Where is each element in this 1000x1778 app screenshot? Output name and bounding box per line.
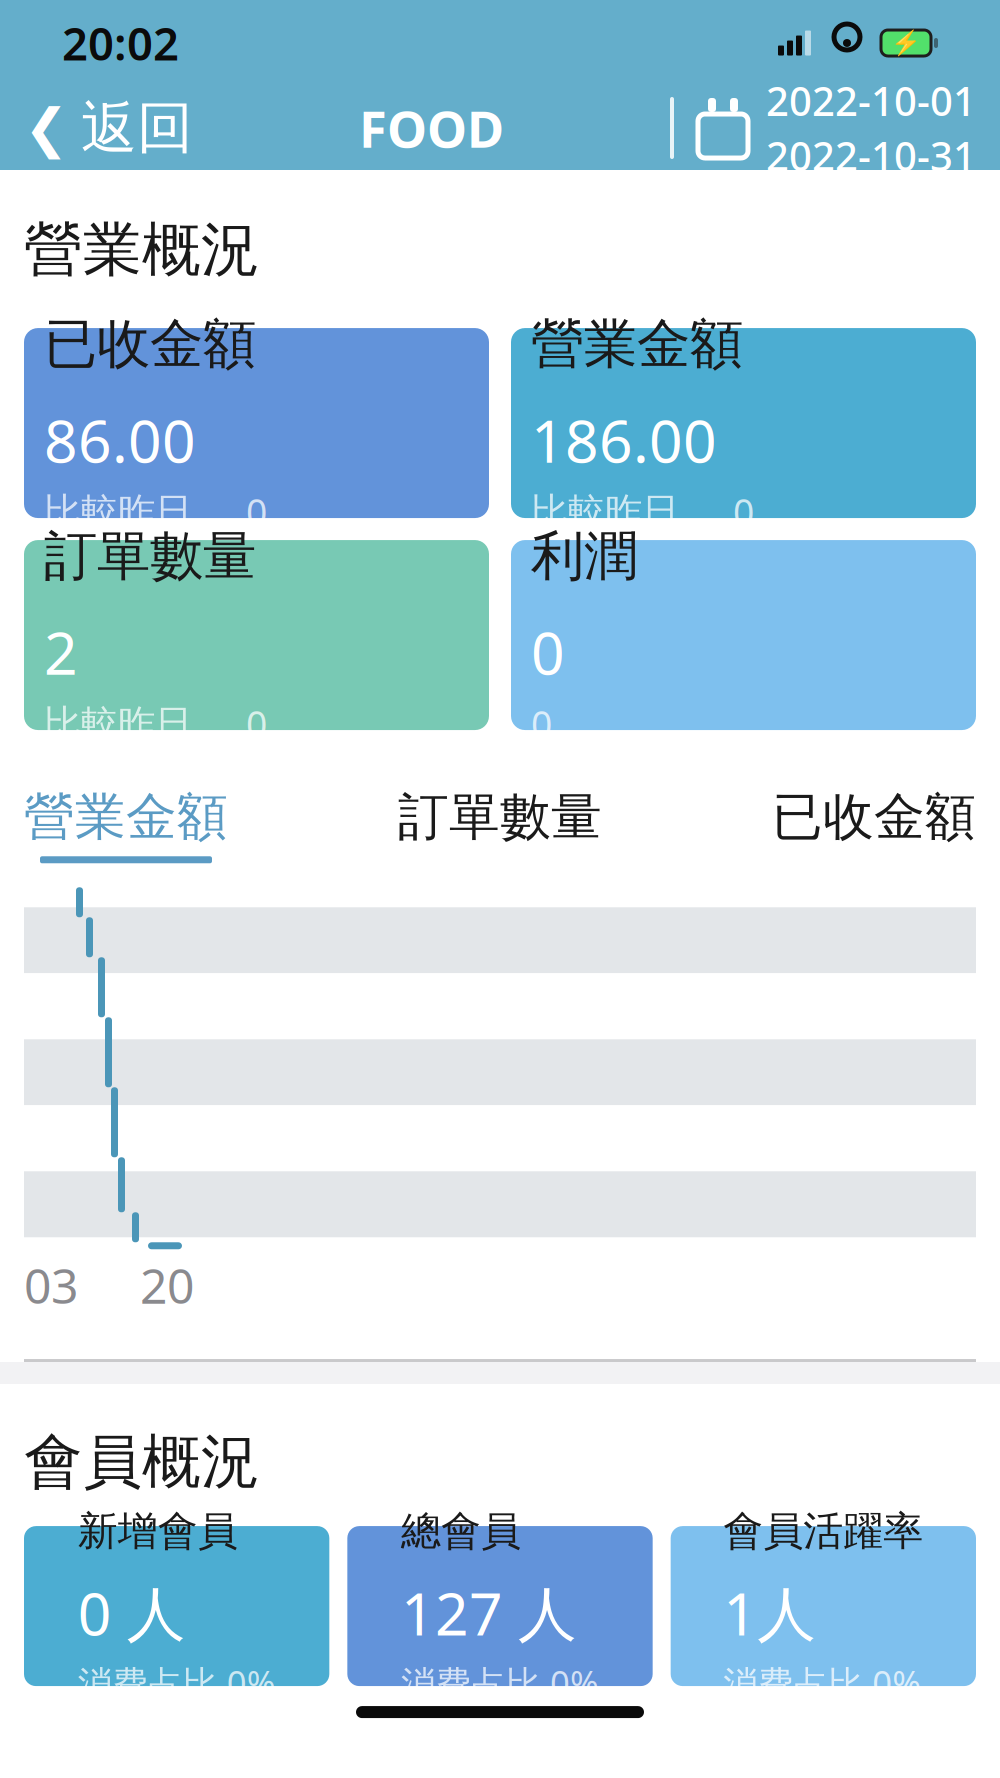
button[interactable]: ❮: [0, 86, 193, 170]
button[interactable]: 總會員: [347, 1526, 653, 1686]
staticText: 20: [140, 1253, 194, 1317]
staticText: 2022-10-01: [766, 74, 976, 127]
button[interactable]: 利潤: [511, 540, 976, 730]
staticText: 186.00: [531, 401, 717, 479]
staticText: ⚡: [891, 29, 921, 57]
staticText: FOOD: [359, 94, 504, 162]
staticText: 0: [531, 699, 552, 749]
staticText: 消费占比 0%: [78, 1660, 276, 1706]
staticText: 比較昨日: [44, 489, 192, 535]
staticText: 消费占比 0%: [401, 1660, 599, 1706]
staticText: 86.00: [44, 401, 196, 479]
button[interactable]: 訂單數量: [398, 786, 602, 863]
button[interactable]: Select date range: [670, 74, 1000, 182]
button[interactable]: 會員活躍率: [671, 1526, 976, 1686]
staticText: 0: [733, 487, 754, 537]
button[interactable]: 營業金額: [511, 328, 976, 518]
staticText: 會員活躍率: [723, 1507, 923, 1556]
staticText: 0: [246, 699, 267, 749]
staticText: 利潤: [531, 524, 637, 589]
staticText: 新增會員: [78, 1507, 238, 1556]
staticText: 營業金額: [531, 312, 743, 377]
staticText: 127 人: [401, 1574, 577, 1652]
staticText: 0 人: [78, 1574, 186, 1652]
staticText: 已收金額: [772, 786, 976, 848]
staticText: 20:02: [62, 13, 179, 73]
button[interactable]: 訂單數量: [24, 540, 489, 730]
staticText: 總會員: [401, 1507, 521, 1556]
staticText: 比較昨日: [531, 489, 679, 535]
staticText: 會員概況: [24, 1426, 260, 1498]
staticText: 營業金額: [24, 786, 228, 848]
staticText: 0: [246, 487, 267, 537]
staticText: 1人: [723, 1574, 816, 1652]
button[interactable]: 新增會員: [24, 1526, 329, 1686]
staticText: 訂單數量: [44, 524, 256, 589]
staticText: 訂單數量: [398, 786, 602, 848]
button[interactable]: 營業金額: [24, 786, 228, 863]
button[interactable]: 已收金額: [772, 786, 976, 863]
staticText: 03: [24, 1253, 78, 1317]
staticText: 0: [531, 613, 565, 691]
staticText: 消费占比 0%: [723, 1660, 921, 1706]
staticText: 比較昨日: [44, 701, 192, 747]
staticText: ❮: [24, 98, 69, 158]
staticText: 返回: [81, 94, 193, 162]
staticText: 2022-10-31: [766, 129, 976, 182]
staticText: 2: [44, 613, 78, 691]
staticText: 營業概況: [24, 214, 260, 286]
staticText: 已收金額: [44, 312, 256, 377]
button[interactable]: 已收金額: [24, 328, 489, 518]
